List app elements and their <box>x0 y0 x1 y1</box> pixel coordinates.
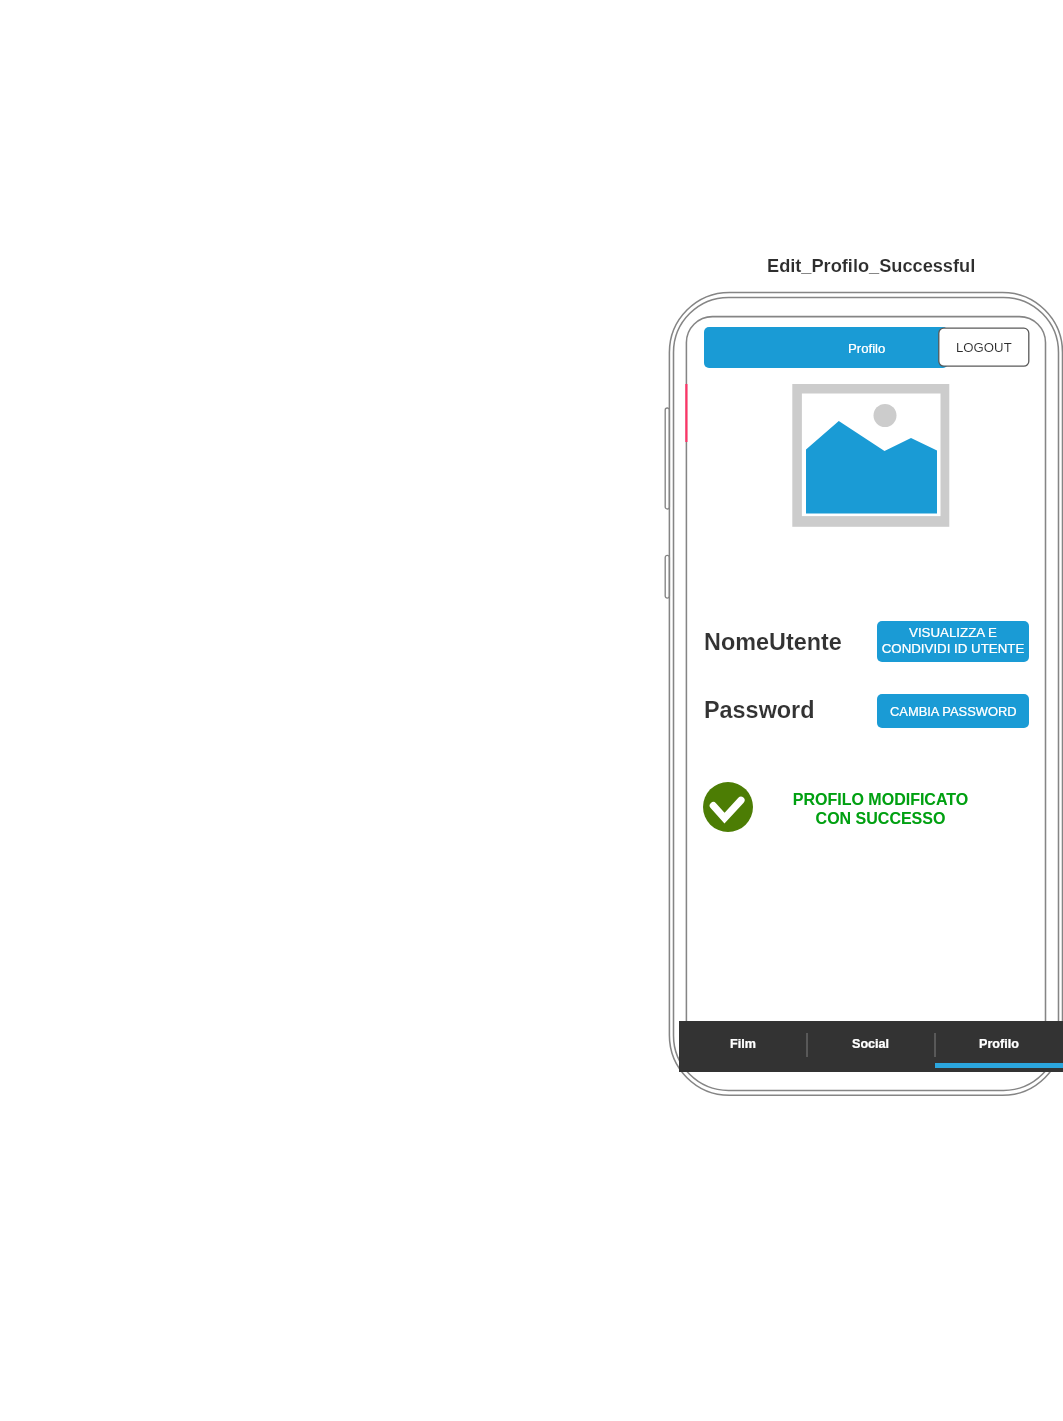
staticText: NomeUtente <box>704 629 842 655</box>
button[interactable]: Profilo <box>704 327 948 368</box>
staticText: CAMBIA PASSWORD <box>890 704 1017 718</box>
button[interactable]: Film <box>679 1021 807 1072</box>
staticText: Password <box>704 697 815 723</box>
staticText: Edit_Profilo_Successful <box>767 256 976 276</box>
staticText: PROFILO MODIFICATO CON SUCCESSO <box>778 791 983 828</box>
other: Operazione riuscita <box>703 782 753 832</box>
button[interactable]: LOGOUT <box>939 328 1029 366</box>
button[interactable]: CAMBIA PASSWORD <box>877 694 1029 728</box>
button[interactable]: Profilo <box>935 1021 1063 1072</box>
staticText: VISUALIZZA E CONDIVIDI ID UTENTE <box>877 625 1029 656</box>
staticText: LOGOUT <box>956 340 1012 355</box>
staticText: Film <box>730 1037 756 1051</box>
staticText: Social <box>852 1037 890 1051</box>
staticText: Profilo <box>979 1037 1019 1051</box>
button[interactable]: VISUALIZZA E CONDIVIDI ID UTENTE <box>877 621 1029 662</box>
button[interactable]: Social <box>807 1021 935 1072</box>
staticText: Profilo <box>848 341 886 356</box>
